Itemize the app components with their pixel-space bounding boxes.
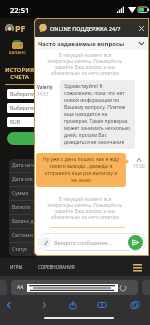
staticText: Системн [12,232,33,239]
staticText: Статус [12,246,28,253]
staticText: Сумма [12,190,29,197]
button[interactable]: Выберите [7,89,52,99]
staticText: 14:57 [37,91,49,97]
staticText: Часто задаваемые вопросы [38,40,125,48]
staticText: Valeriy [37,84,53,90]
button[interactable]: ИГРЫ [0,258,32,276]
other: Обновить [120,285,126,291]
button[interactable]: Меню [131,261,143,273]
button[interactable]: Закрыть [137,24,146,33]
button[interactable]: ONLINE ПОДДЕРЖКА 24/7 [39,19,146,37]
staticText: Дата нач [12,162,34,169]
staticText: ИСТОРИЯ СЧЕТА [0,66,39,81]
staticText: Дата отк [12,176,33,183]
staticText: ИГРЫ [10,264,23,270]
staticText: В текущий момент все операторы заняты. П… [46,196,124,220]
staticText: 15:30 [133,163,145,169]
staticText: Выберите [10,91,34,98]
staticText: Баланс д [12,218,34,225]
button[interactable]: Вперёд [37,298,51,312]
button[interactable]: Назад [2,298,16,312]
staticText: PF [15,22,26,34]
staticText: Здравствуйте! К сожалению, пока что нет … [64,83,132,146]
button[interactable]: Закладки [95,298,109,312]
staticText: В текущий момент все операторы заняты. П… [46,52,124,76]
staticText: AA [17,284,24,291]
button[interactable]: Введите сообщение... [40,233,147,251]
staticText: RUB [10,119,21,126]
button[interactable]: Поделиться [66,298,80,312]
staticText: Выберите [10,105,34,112]
button[interactable]: Часто задаваемые вопросы [38,37,144,50]
button[interactable]: СОРЕВНОВАНИЯ [32,258,80,276]
staticText: СОРЕВНОВАНИЯ [38,264,75,270]
button[interactable]: Вкладки [128,298,142,312]
staticText: Введите сообщение... [54,239,113,246]
staticText: 22:51 [10,5,30,15]
staticText: БАЛАНС [9,50,26,55]
button[interactable]: п [7,132,52,145]
button[interactable]: Выберите [7,103,52,113]
button[interactable]: AA [11,280,138,295]
staticText: Валюта [12,204,31,211]
staticText: Ну уже с день пошел, как я жду своего вы… [41,156,121,184]
button[interactable]: Отправить [128,235,143,250]
staticText: ONLINE ПОДДЕРЖКА 24/7 [50,25,121,32]
button[interactable]: RUB [7,117,52,127]
